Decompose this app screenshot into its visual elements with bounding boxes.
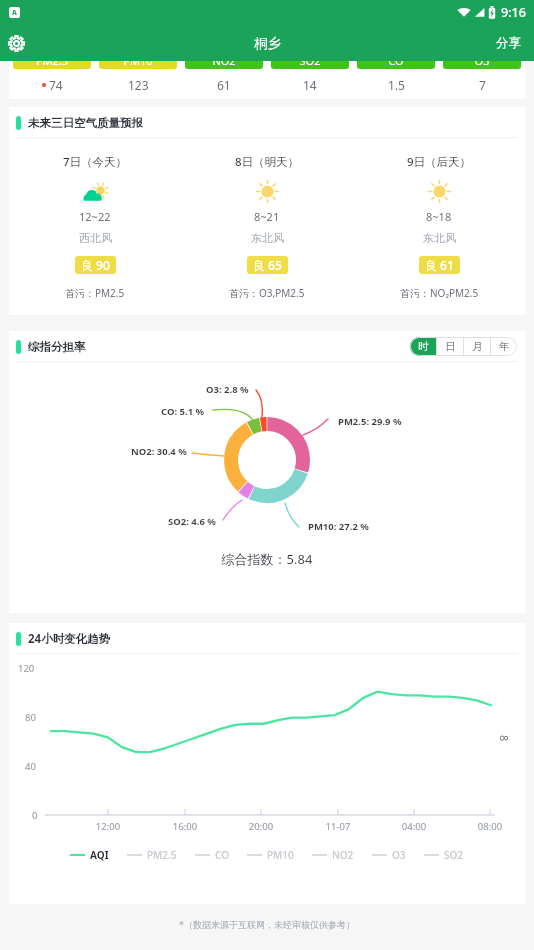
staticText: 综合指数：5.84: [9, 550, 525, 568]
button[interactable]: 9日（后天）: [353, 138, 525, 315]
staticText: O3: [392, 848, 406, 862]
button[interactable]: 年: [491, 337, 517, 356]
staticText: AQI: [90, 848, 109, 862]
button[interactable]: O3: [363, 844, 415, 866]
button[interactable]: PM2.5: [118, 844, 186, 866]
staticText: NO2: 30.4 %: [131, 445, 187, 458]
staticText: PM10: [267, 848, 294, 862]
staticText: CO: [357, 53, 435, 68]
staticText: NO2: [185, 53, 263, 68]
staticText: 东北风: [423, 231, 456, 245]
button[interactable]: O3: [439, 45, 525, 99]
staticText: 04:00: [389, 820, 439, 833]
button[interactable]: 日: [437, 337, 463, 356]
staticText: 123: [128, 77, 149, 93]
button[interactable]: 8日（明天）: [181, 138, 353, 315]
staticText: 80: [25, 711, 36, 724]
staticText: 首污：NO₂PM2.5: [400, 286, 479, 300]
staticText: 桐乡: [254, 35, 281, 52]
staticText: 7: [479, 77, 486, 93]
staticText: 24小时变化趋势: [28, 631, 111, 647]
staticText: CO: 5.1 %: [161, 405, 205, 418]
staticText: 1.5: [388, 77, 405, 93]
staticText: 良 61: [425, 257, 454, 273]
staticText: 分享: [496, 35, 521, 51]
button[interactable]: 月: [464, 337, 490, 356]
staticText: 7日（今天）: [63, 154, 128, 170]
staticText: 74: [49, 77, 63, 93]
button[interactable]: Settings: [0, 27, 32, 59]
staticText: 08:00: [465, 820, 515, 833]
staticText: 时: [418, 340, 429, 353]
button[interactable]: NO2: [181, 45, 267, 99]
staticText: 8~21: [254, 209, 280, 224]
staticText: 20:00: [236, 820, 286, 833]
staticText: 良 65: [253, 257, 282, 273]
staticText: O3: [443, 53, 521, 68]
button[interactable]: CO: [353, 45, 439, 99]
button[interactable]: PM10: [238, 844, 303, 866]
staticText: 16:00: [160, 820, 210, 833]
staticText: 月: [472, 340, 483, 353]
staticText: A: [12, 8, 17, 18]
staticText: CO: [215, 848, 229, 862]
button[interactable]: AQI: [61, 844, 118, 866]
staticText: 西北风: [79, 231, 112, 245]
button[interactable]: PM10: [95, 45, 181, 99]
staticText: 首污：PM2.5: [65, 286, 125, 300]
button[interactable]: SO2: [415, 844, 473, 866]
button[interactable]: SO2: [267, 45, 353, 99]
staticText: 良 90: [81, 257, 110, 273]
staticText: 11-07: [313, 820, 363, 833]
button[interactable]: PM2.5: [9, 45, 95, 99]
staticText: PM2.5: 29.9 %: [338, 415, 402, 428]
staticText: 120: [18, 662, 35, 675]
button[interactable]: 分享: [483, 25, 534, 61]
staticText: PM10: [99, 53, 177, 68]
staticText: PM2.5: [147, 848, 177, 862]
staticText: 8: [497, 735, 512, 742]
staticText: NO2: [332, 848, 354, 862]
staticText: 40: [25, 760, 36, 773]
staticText: 综指分担率: [28, 340, 86, 354]
staticText: 12:00: [83, 820, 133, 833]
staticText: PM2.5: [13, 53, 91, 68]
staticText: 9日（后天）: [407, 154, 472, 170]
staticText: 未来三日空气质量预报: [28, 116, 143, 130]
staticText: 9:16: [501, 4, 526, 21]
staticText: 61: [217, 77, 231, 93]
button[interactable]: 7日（今天）: [9, 138, 181, 315]
staticText: 8~18: [426, 209, 452, 224]
staticText: 东北风: [251, 231, 284, 245]
staticText: 年: [499, 340, 510, 353]
button[interactable]: CO: [186, 844, 238, 866]
staticText: PM10: 27.2 %: [308, 520, 369, 533]
staticText: SO2: 4.6 %: [168, 515, 216, 528]
staticText: 0: [32, 809, 38, 822]
staticText: 首污：O3,PM2.5: [229, 286, 305, 300]
staticText: *（数据来源于互联网，未经审核仅供参考）: [0, 918, 534, 930]
staticText: SO2: [444, 848, 464, 862]
staticText: SO2: [271, 53, 349, 68]
staticText: 12~22: [79, 209, 111, 224]
staticText: 14: [303, 77, 317, 93]
staticText: 8日（明天）: [235, 154, 300, 170]
staticText: 日: [445, 340, 456, 353]
button[interactable]: NO2: [303, 844, 363, 866]
button[interactable]: 时: [410, 337, 436, 356]
staticText: O3: 2.8 %: [206, 383, 249, 396]
